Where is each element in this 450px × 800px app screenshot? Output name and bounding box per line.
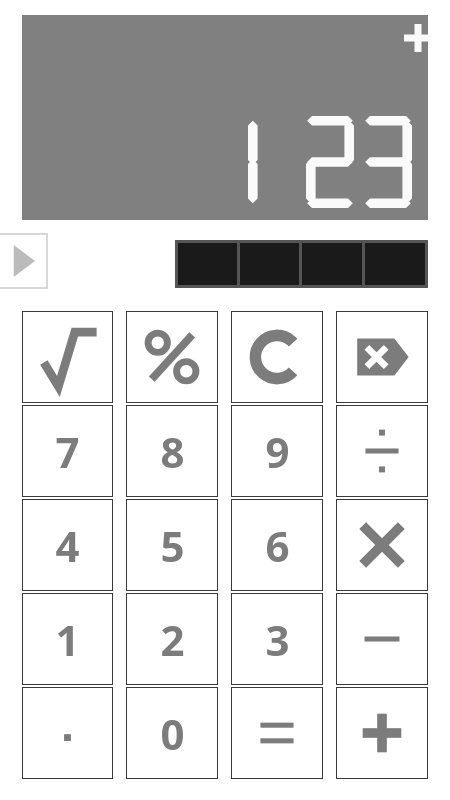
button[interactable]: Display showing 123, pending add [22, 15, 428, 220]
button[interactable]: Divide [336, 405, 428, 497]
button[interactable]: Multiply [336, 499, 428, 591]
staticText: 8 [160, 423, 185, 480]
button[interactable]: Equals [231, 687, 323, 779]
button[interactable]: Clear [231, 311, 323, 403]
button[interactable]: 5 [126, 499, 218, 591]
button[interactable]: 8 [126, 405, 218, 497]
staticText: 3 [265, 611, 290, 668]
button[interactable]: Backspace [336, 311, 428, 403]
button[interactable]: Memory slots [178, 243, 425, 285]
button[interactable]: 9 [231, 405, 323, 497]
staticText: 1 [55, 611, 80, 668]
button[interactable]: Plus [336, 687, 428, 779]
staticText: 4 [55, 517, 80, 574]
button[interactable]: 6 [231, 499, 323, 591]
button[interactable]: Expand history [0, 233, 48, 289]
button[interactable]: Percent [126, 311, 218, 403]
button[interactable]: Minus [336, 593, 428, 685]
staticText: 5 [160, 517, 185, 574]
button[interactable]: Decimal point [22, 687, 113, 779]
staticText: 0 [160, 705, 185, 762]
staticText: 7 [55, 423, 80, 480]
button[interactable]: 0 [126, 687, 218, 779]
button[interactable]: 2 [126, 593, 218, 685]
staticText: 6 [265, 517, 290, 574]
button[interactable]: 1 [22, 593, 113, 685]
staticText: 2 [160, 611, 185, 668]
button[interactable]: 3 [231, 593, 323, 685]
button[interactable]: 7 [22, 405, 113, 497]
button[interactable]: 4 [22, 499, 113, 591]
staticText: 9 [265, 423, 290, 480]
button[interactable]: Square root [22, 311, 113, 403]
